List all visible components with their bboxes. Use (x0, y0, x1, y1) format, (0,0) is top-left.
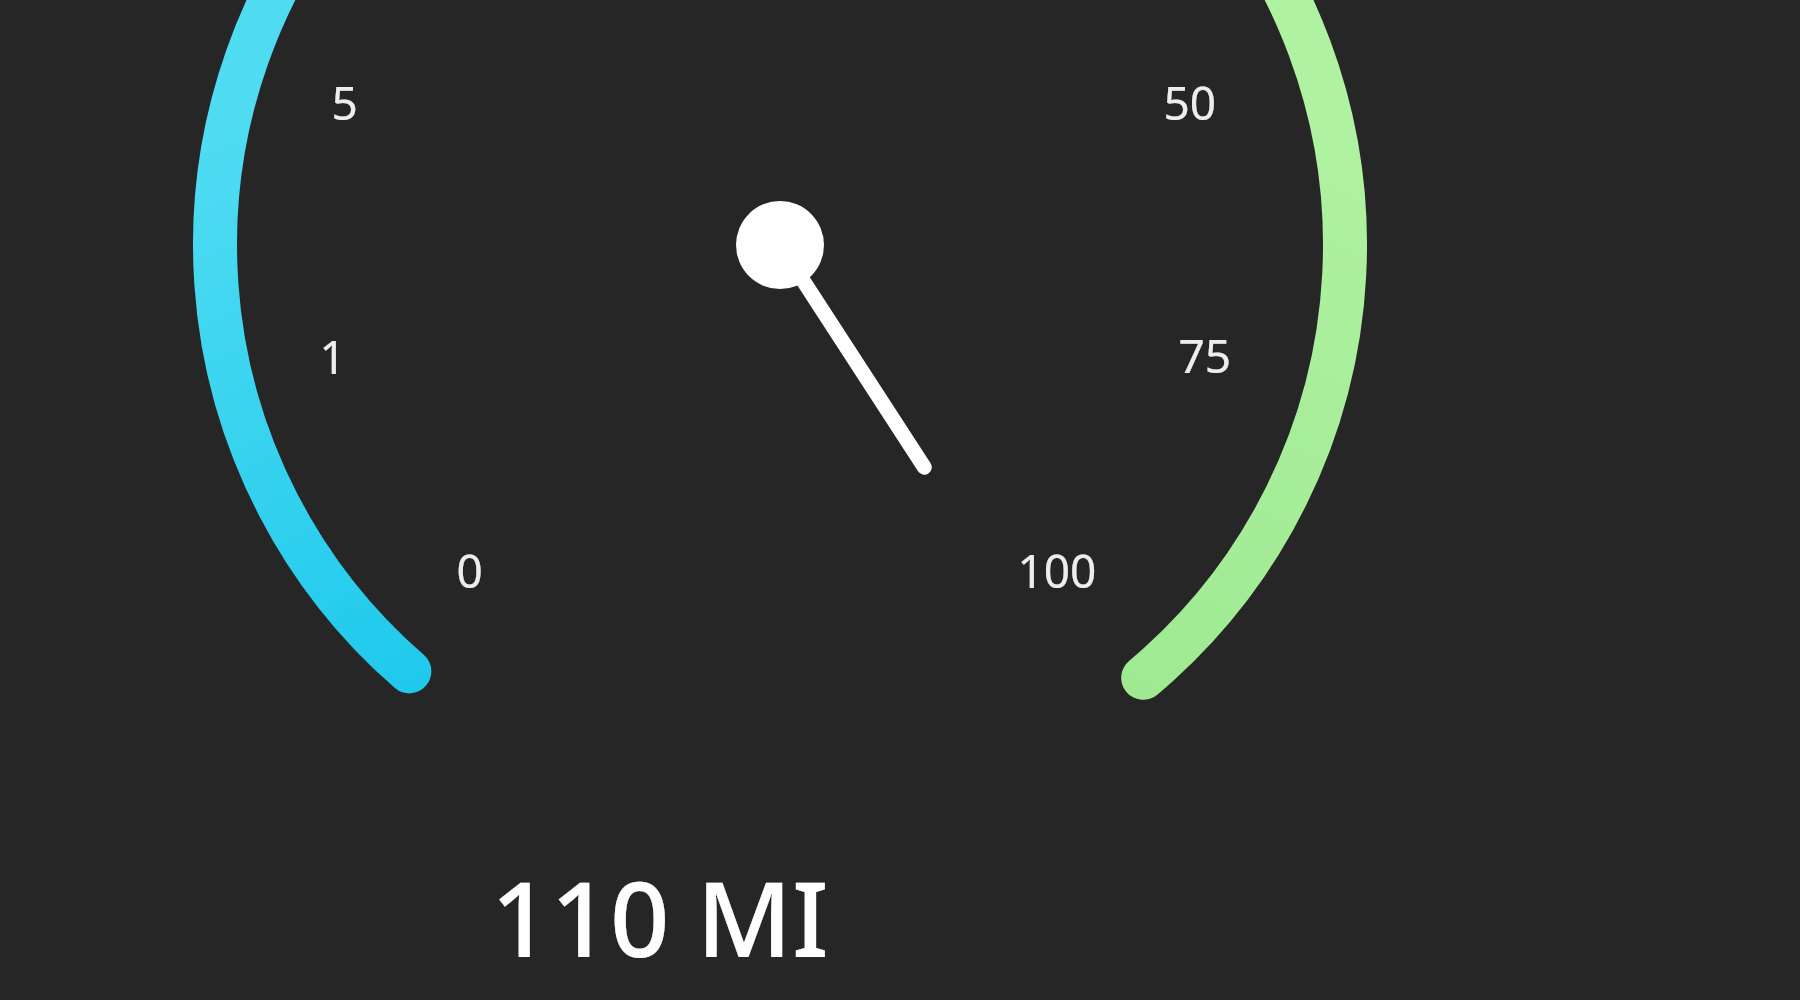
button[interactable]: Speedometer gauge (0, 0, 1800, 1000)
